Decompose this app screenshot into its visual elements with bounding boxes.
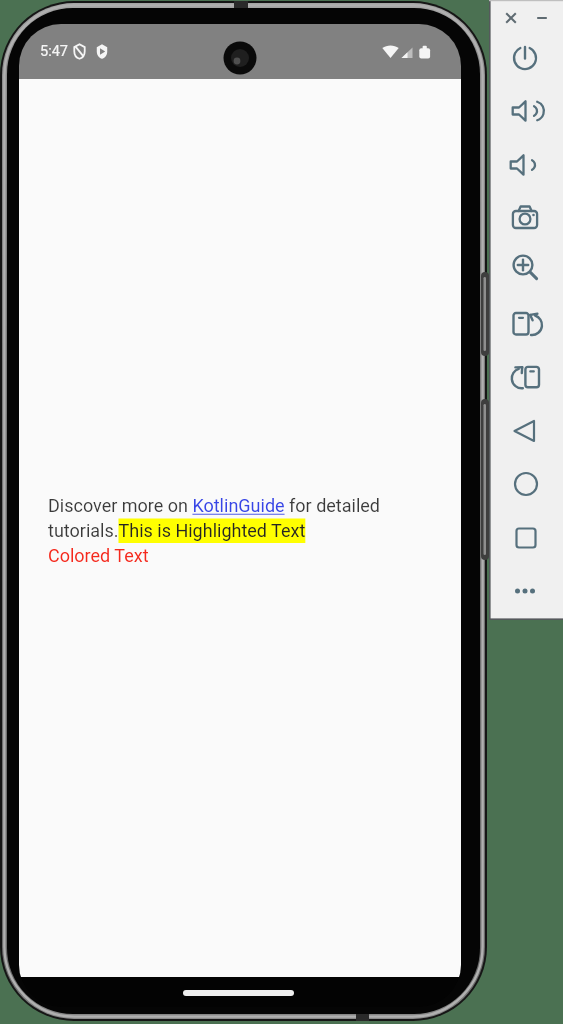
button[interactable] — [503, 145, 543, 185]
staticText: Discover more on KotlinGuide for detaile… — [48, 493, 380, 568]
button[interactable] — [506, 464, 546, 504]
button[interactable] — [506, 518, 546, 558]
button[interactable] — [504, 248, 544, 288]
button[interactable] — [506, 358, 546, 398]
button[interactable] — [506, 411, 546, 451]
button[interactable] — [505, 91, 545, 131]
button[interactable]: Discover more on KotlinGuide for detaile… — [48, 493, 380, 568]
button[interactable] — [506, 198, 546, 238]
button[interactable] — [506, 305, 546, 345]
button[interactable] — [505, 38, 545, 78]
button[interactable] — [522, 0, 562, 38]
button[interactable] — [491, 0, 531, 38]
staticText: 5:47 — [40, 43, 68, 60]
button[interactable] — [505, 571, 545, 611]
